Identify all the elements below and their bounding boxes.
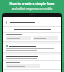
button[interactable]: Back	[5, 21, 8, 24]
staticText: How to create a simple form	[3, 2, 61, 6]
button[interactable]	[3, 61, 61, 69]
button[interactable]	[3, 33, 61, 41]
staticText: and collect responses on mobile	[3, 7, 61, 11]
